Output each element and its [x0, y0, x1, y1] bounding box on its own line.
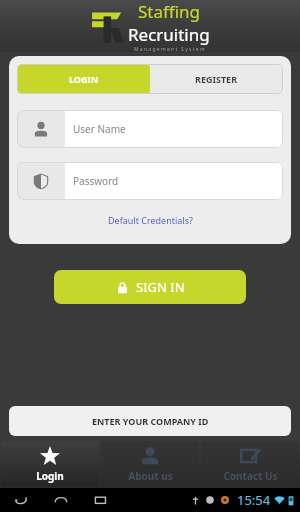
staticText: Password — [73, 174, 119, 188]
staticText: Recruiting — [128, 23, 210, 46]
staticText: M a n a g e m e n t S y s t e m — [134, 46, 205, 52]
button[interactable]: Default Credentials? — [108, 214, 193, 226]
staticText: Staffing — [138, 0, 201, 23]
button[interactable]: Contact Us — [201, 441, 299, 487]
staticText: 15:54 — [237, 491, 271, 509]
staticText: About us — [128, 469, 173, 483]
button[interactable]: About us — [101, 441, 199, 487]
staticText: Contact Us — [223, 469, 278, 483]
staticText: SIGN IN — [136, 278, 185, 296]
button[interactable]: Password — [17, 162, 283, 200]
button[interactable]: LOGIN — [17, 64, 150, 94]
staticText: ENTER YOUR COMPANY ID — [92, 415, 209, 427]
staticText: LOGIN — [69, 73, 99, 85]
other: Recents — [94, 493, 108, 507]
button[interactable]: REGISTER — [150, 64, 283, 94]
other: Home — [54, 493, 68, 507]
button[interactable]: Login — [1, 441, 99, 487]
staticText: REGISTER — [195, 73, 238, 85]
button[interactable]: User Name — [17, 110, 283, 148]
button[interactable]: SIGN IN — [54, 270, 246, 304]
staticText: Login — [36, 469, 64, 483]
other: Back — [14, 493, 28, 507]
staticText: User Name — [73, 122, 126, 136]
button[interactable]: ENTER YOUR COMPANY ID — [9, 406, 291, 436]
